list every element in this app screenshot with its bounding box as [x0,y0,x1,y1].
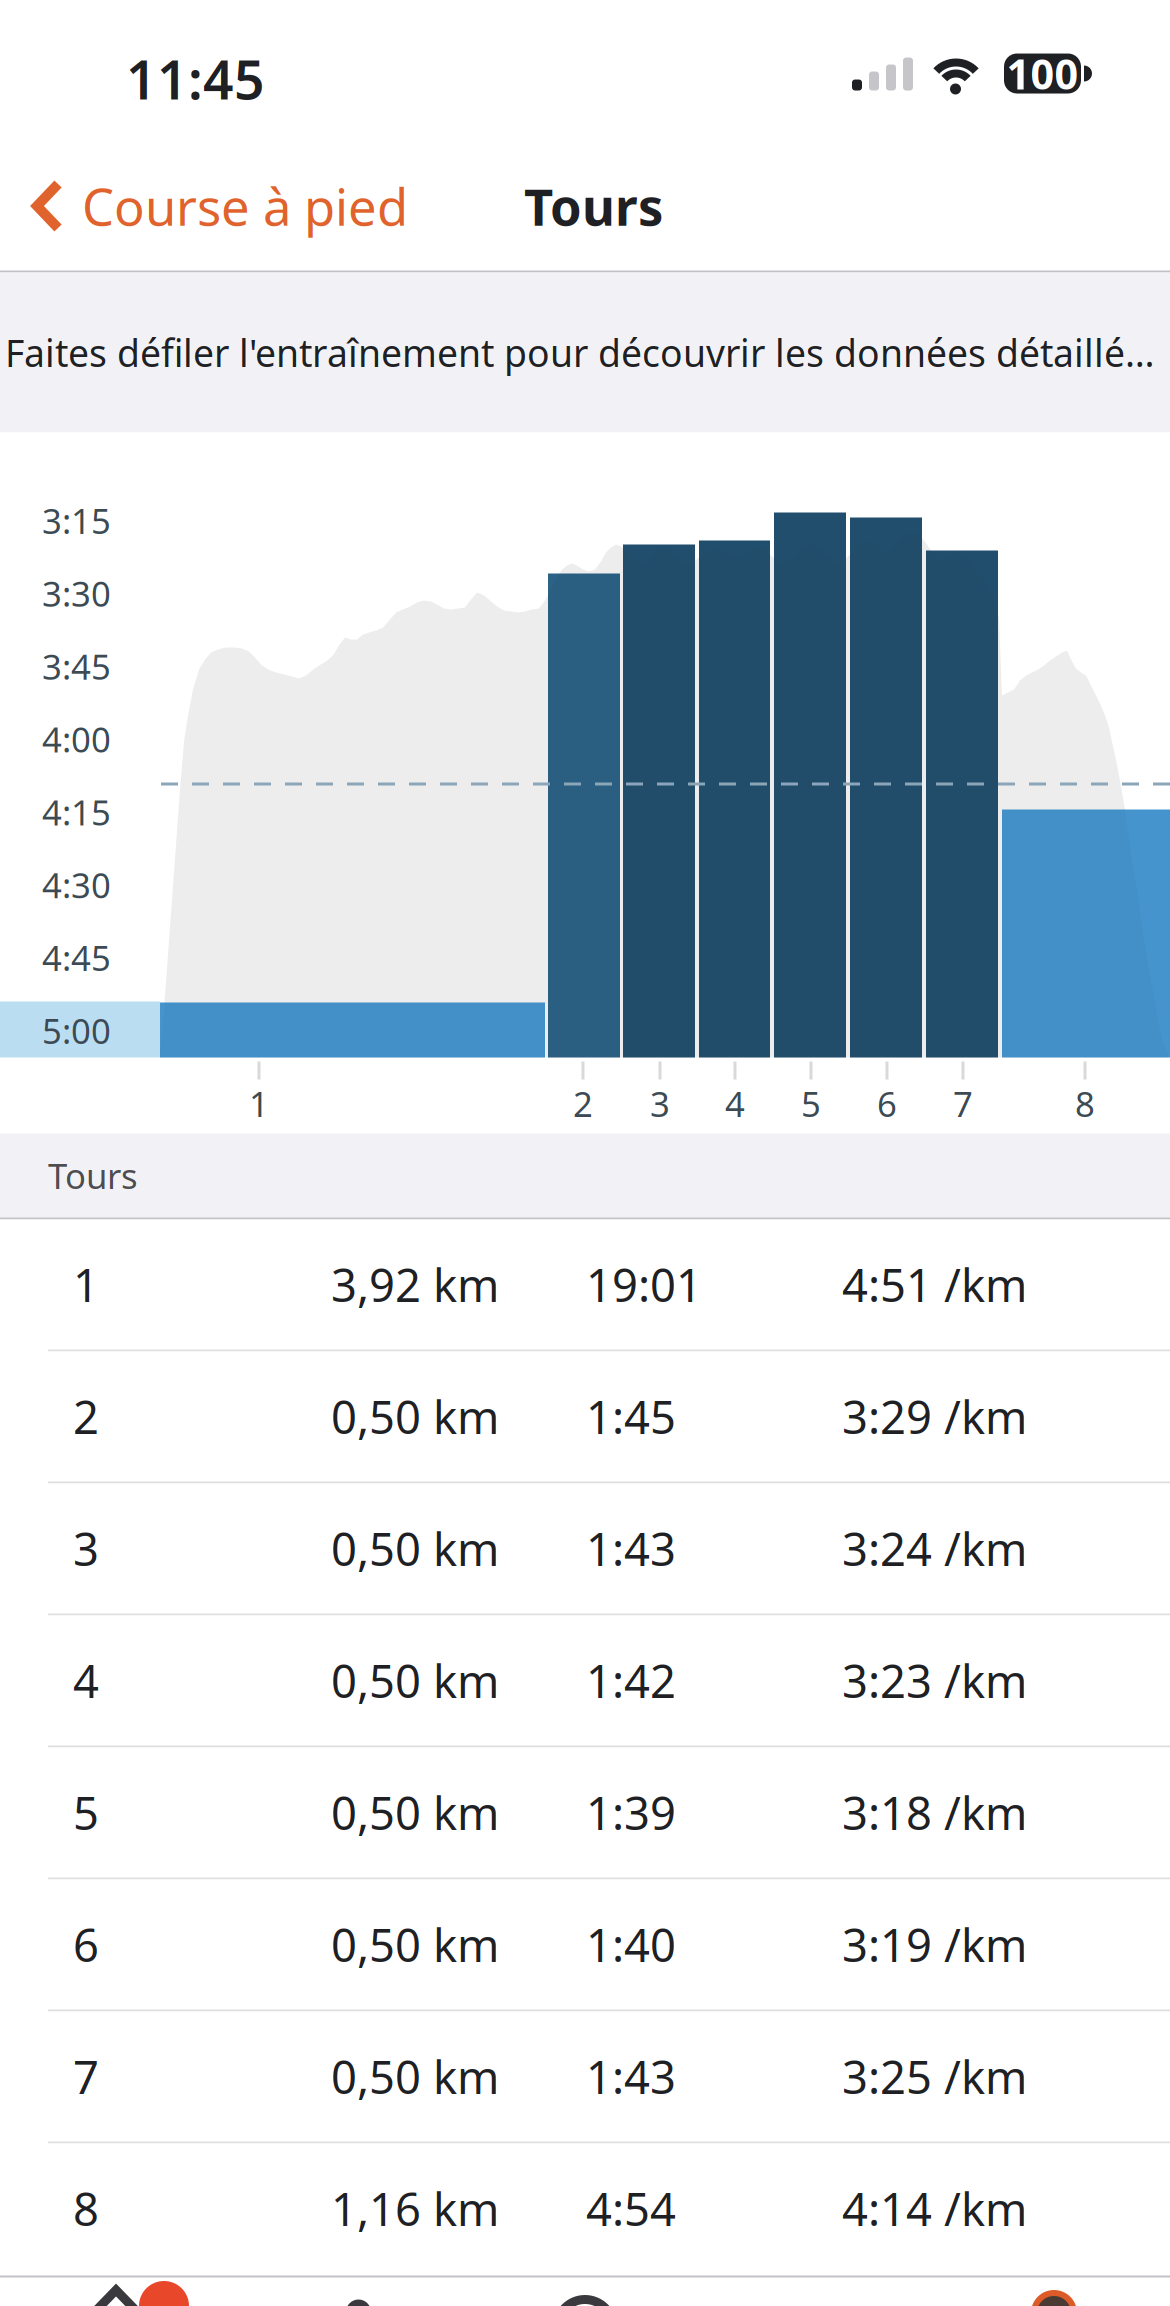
staticText: 4 [725,1080,745,1126]
button[interactable]: Profil [234,2275,468,2306]
button[interactable]: 8 [0,2143,1170,2275]
staticText: 7 [953,1080,973,1126]
staticText: 4:14 /km [842,2178,1027,2239]
staticText: 3 [650,1080,670,1126]
staticText: 0,50 km [331,1782,499,1843]
staticText: 1,16 km [331,2178,499,2239]
staticText: 4:54 [586,2178,676,2239]
button[interactable]: Course à pied [0,141,408,270]
staticText: 1:45 [586,1386,676,1447]
button[interactable]: 1 [0,1219,1170,1351]
button[interactable]: 2 [0,1351,1170,1483]
staticText: 8 [1075,1080,1095,1126]
staticText: 4:00 [42,716,111,762]
staticText: 4:45 [42,935,111,981]
staticText: Tours [48,1152,138,1198]
staticText: 4:15 [42,789,111,835]
staticText: 11:45 [126,43,265,114]
staticText: 0,50 km [331,1650,499,1711]
staticText: 3:29 /km [842,1386,1027,1447]
staticText: 0,50 km [331,2046,499,2107]
staticText: 3:45 [42,643,111,689]
staticText: 1:43 [586,1518,676,1579]
staticText: 3:25 /km [842,2046,1027,2107]
button[interactable]: Accueil [0,2275,234,2306]
staticText: 3:15 [42,497,111,543]
staticText: 2 [573,1080,593,1126]
staticText: 3 [73,1518,99,1579]
staticText: 0,50 km [331,1386,499,1447]
staticText: 3:23 /km [842,1650,1027,1711]
staticText: 2 [73,1386,99,1447]
staticText: 3:30 [42,570,111,616]
staticText: 3:18 /km [842,1782,1027,1843]
staticText: 1:42 [586,1650,676,1711]
staticText: Faites défiler l'entraînement pour décou… [5,328,1170,377]
staticText: 1:43 [586,2046,676,2107]
staticText: 19:01 [586,1254,702,1315]
staticText: 1 [73,1254,99,1315]
button[interactable]: Compte [936,2275,1170,2306]
staticText: 4:51 /km [842,1254,1027,1315]
staticText: 8 [73,2178,99,2239]
staticText: 4:30 [42,862,111,908]
staticText: Tours [524,172,663,240]
staticText: 1:40 [586,1914,676,1975]
staticText: 0,50 km [331,1518,499,1579]
button[interactable]: 3 [0,1483,1170,1615]
staticText: 7 [73,2046,99,2107]
staticText: Course à pied [82,172,408,240]
button[interactable]: 4 [0,1615,1170,1747]
staticText: 5:00 [42,1007,111,1053]
staticText: 100 [1006,46,1078,101]
staticText: 1 [249,1080,269,1126]
staticText: 5 [73,1782,99,1843]
button[interactable]: 5 [0,1747,1170,1879]
staticText: 3:24 /km [842,1518,1027,1579]
staticText: 6 [73,1914,99,1975]
staticText: 6 [877,1080,897,1126]
staticText: 0,50 km [331,1914,499,1975]
button[interactable]: 7 [0,2011,1170,2143]
staticText: 3,92 km [331,1254,499,1315]
staticText: 5 [801,1080,821,1126]
button[interactable]: Recherche [702,2275,936,2306]
button[interactable]: Activité [468,2275,702,2306]
staticText: 3:19 /km [842,1914,1027,1975]
staticText: 4 [73,1650,99,1711]
staticText: 1:39 [586,1782,676,1843]
button[interactable]: 6 [0,1879,1170,2011]
